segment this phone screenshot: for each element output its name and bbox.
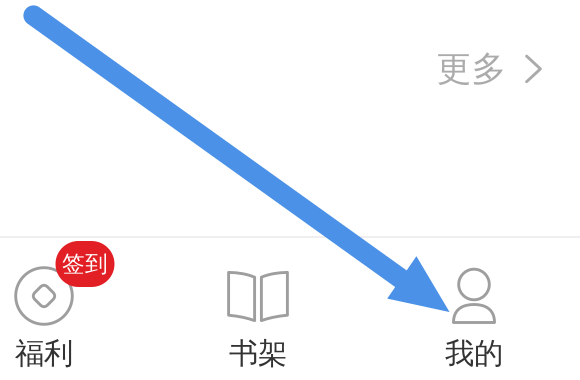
staticText: 更多	[436, 48, 506, 90]
button[interactable]: 签到	[0, 238, 152, 380]
button[interactable]: 我的	[366, 238, 580, 380]
staticText: 福利	[15, 335, 73, 371]
staticText: 我的	[445, 335, 503, 371]
button[interactable]: 更多	[434, 38, 566, 100]
button[interactable]: 书架	[150, 238, 366, 380]
staticText: 书架	[229, 335, 287, 371]
staticText: 签到	[62, 250, 108, 278]
